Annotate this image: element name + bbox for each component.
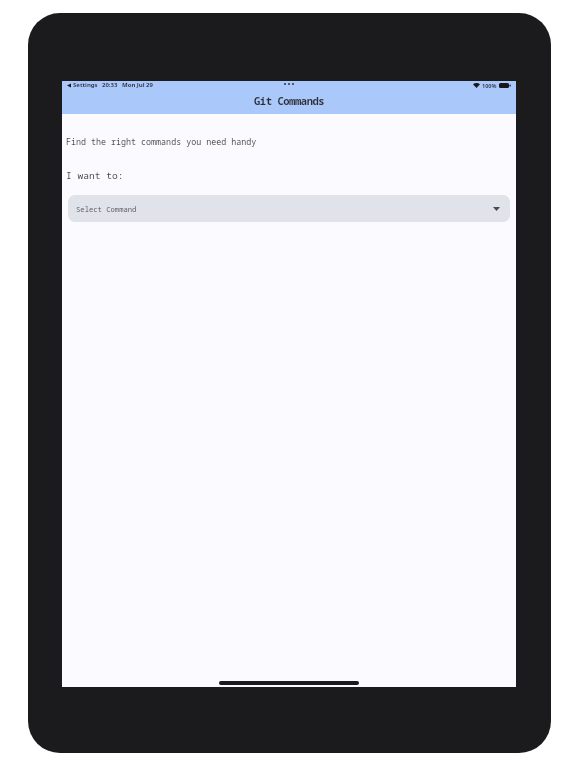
staticText: 20:33 bbox=[102, 81, 118, 89]
button[interactable]: Select Command bbox=[68, 195, 510, 222]
staticText: I want to: bbox=[66, 169, 124, 182]
staticText: Settings bbox=[73, 81, 98, 89]
staticText: Mon Jul 29 bbox=[122, 81, 153, 89]
staticText: Select Command bbox=[76, 204, 137, 214]
staticText: Find the right commands you need handy bbox=[66, 136, 257, 147]
staticText: Git Commands bbox=[254, 94, 325, 108]
staticText: 100% bbox=[482, 82, 497, 89]
